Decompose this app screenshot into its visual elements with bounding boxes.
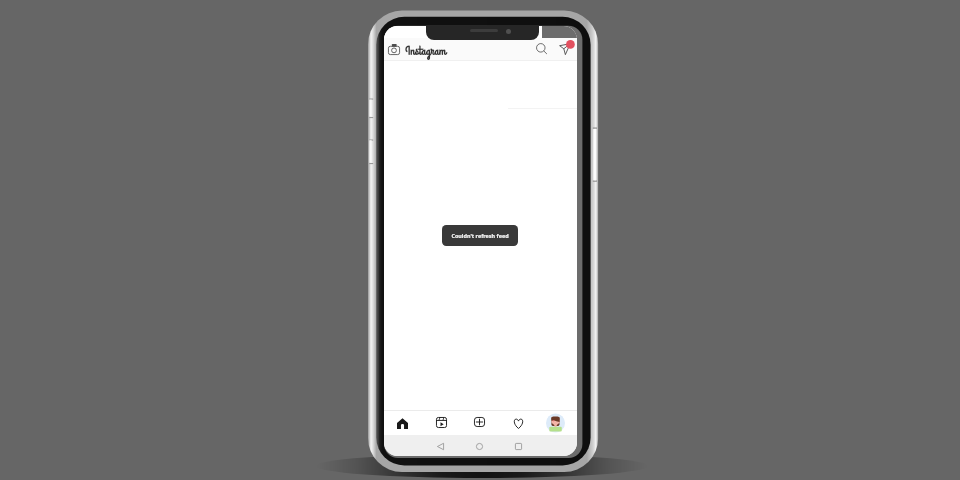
button[interactable]: Messages [555,37,577,59]
button[interactable]: Home [384,411,422,435]
button[interactable]: Activity [499,411,538,435]
button[interactable]: Back [434,440,446,452]
staticText: Instagram [405,43,446,61]
button[interactable]: Reels [422,411,461,435]
button[interactable]: Camera [384,39,404,59]
button[interactable]: Home [473,440,485,452]
staticText: Couldn't refresh feed [451,232,509,239]
button[interactable]: Profile [536,411,575,435]
button[interactable]: Search [530,37,552,59]
button[interactable]: Create [460,411,499,435]
button[interactable]: Recents [512,440,524,452]
